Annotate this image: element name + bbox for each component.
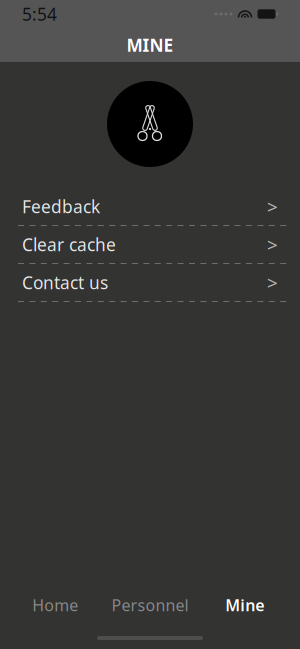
button[interactable]: Contact us — [0, 264, 300, 302]
button[interactable]: Personnel — [103, 583, 197, 627]
button[interactable]: Feedback — [0, 188, 300, 226]
staticText: > — [267, 194, 278, 219]
staticText: Home — [32, 594, 78, 616]
staticText: > — [267, 270, 278, 295]
staticText: Clear cache — [22, 233, 116, 256]
button[interactable]: Mine — [197, 583, 292, 627]
button[interactable]: Clear cache — [0, 226, 300, 264]
staticText: Mine — [225, 594, 264, 616]
staticText: Feedback — [22, 195, 100, 218]
staticText: Contact us — [22, 271, 108, 294]
staticText: Personnel — [111, 594, 188, 616]
staticText: > — [267, 232, 278, 257]
staticText: 5:54 — [22, 2, 57, 25]
button[interactable]: Home — [8, 583, 103, 627]
staticText: MINE — [126, 33, 173, 56]
